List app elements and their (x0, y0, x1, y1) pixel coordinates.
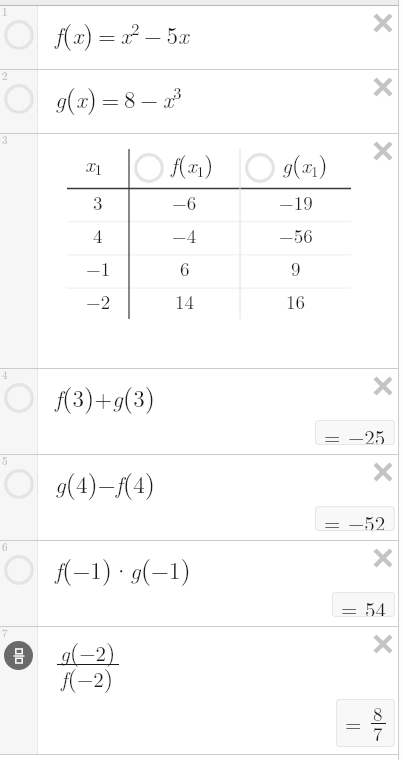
staticText: 16 (286, 288, 306, 315)
button[interactable]: 2 (0, 70, 399, 133)
staticText: 9 (291, 255, 301, 282)
staticText: 6 (2, 539, 8, 555)
staticText: 3 (2, 132, 8, 148)
button[interactable]: = (337, 700, 394, 746)
staticText: 7 (2, 625, 8, 641)
staticText: g(x) = 8 − x3 (55, 78, 182, 116)
staticText: = (345, 708, 362, 738)
staticText: −1 (86, 255, 111, 282)
button[interactable]: 3 (0, 134, 399, 368)
button[interactable]: 1 (0, 6, 399, 69)
staticText: g(4)−f(4) (55, 463, 156, 501)
staticText: 4 (2, 367, 8, 383)
staticText: −4 (172, 222, 197, 249)
staticText: = (324, 507, 341, 530)
staticText: −56 (279, 222, 313, 249)
staticText: f(−1)·g(−1) (55, 549, 191, 587)
staticText: x1 (85, 148, 103, 180)
button[interactable]: = (316, 421, 394, 444)
button[interactable]: Delete expression (364, 625, 402, 663)
staticText: f(x) = x2 − 5x (55, 14, 189, 52)
staticText: −52 (348, 507, 386, 530)
button[interactable]: 7 (0, 627, 399, 754)
staticText: 2 (2, 68, 8, 84)
staticText: 54 (365, 593, 386, 616)
staticText: = (324, 421, 341, 444)
button[interactable]: 6 (0, 541, 399, 626)
staticText: −19 (279, 189, 313, 216)
button[interactable]: Delete expression (364, 453, 402, 491)
staticText: = (341, 593, 358, 616)
staticText: −2 (86, 288, 111, 315)
button[interactable]: = (316, 507, 394, 530)
staticText: f(x1) (171, 146, 214, 181)
staticText: f(3)+g(3) (55, 377, 156, 415)
staticText: 7 (373, 720, 383, 746)
staticText: −25 (348, 421, 386, 444)
staticText: 14 (175, 288, 195, 315)
button[interactable]: Delete expression (364, 68, 402, 106)
button[interactable]: Fraction keypad (4, 641, 33, 670)
button[interactable]: = (333, 593, 394, 616)
staticText: f(−2) (61, 660, 114, 695)
button[interactable]: Delete expression (364, 539, 402, 577)
button[interactable]: Delete expression (364, 4, 402, 42)
staticText: 6 (180, 255, 190, 282)
staticText: g(−2) (60, 634, 116, 669)
staticText: 1 (2, 4, 8, 20)
staticText: 8 (373, 700, 383, 727)
staticText: g(x1) (282, 146, 328, 181)
button[interactable]: Delete expression (364, 367, 402, 405)
button[interactable]: Delete expression (364, 132, 402, 170)
button[interactable]: 4 (0, 369, 399, 454)
staticText: −6 (172, 189, 197, 216)
staticText: 5 (2, 453, 8, 469)
button[interactable]: 5 (0, 455, 399, 540)
staticText: 3 (93, 189, 103, 216)
staticText: 4 (93, 222, 103, 249)
